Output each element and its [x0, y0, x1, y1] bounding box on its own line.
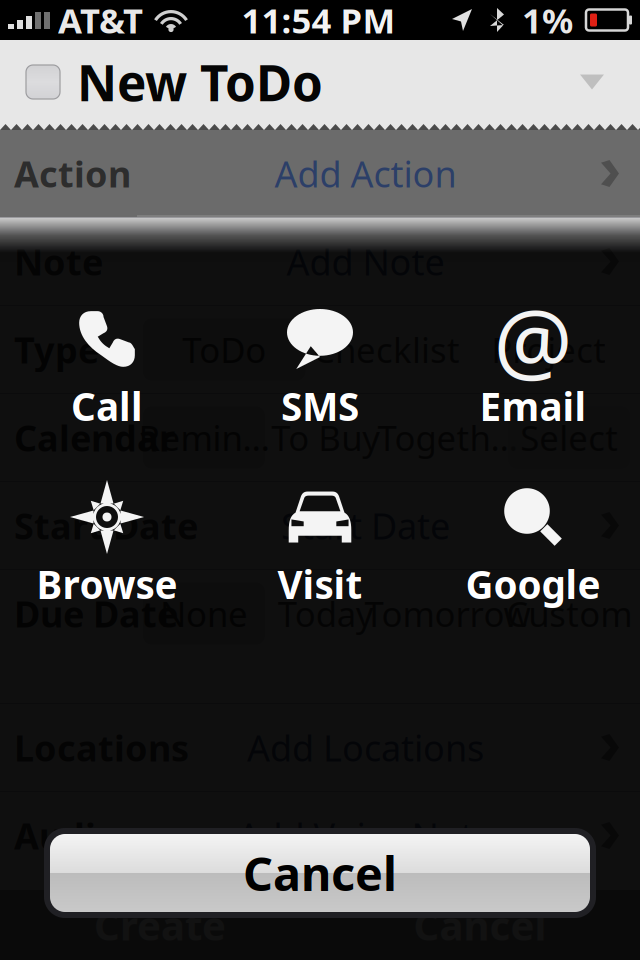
staticText: Project — [491, 326, 606, 372]
button[interactable]: Mark complete — [0, 43, 77, 121]
staticText: Due Date — [14, 590, 178, 637]
button[interactable]: Create — [0, 890, 320, 960]
staticText: Add Locations — [247, 724, 484, 771]
staticText: None — [160, 590, 248, 636]
staticText: Create — [94, 898, 226, 951]
staticText: Note — [14, 238, 103, 285]
staticText: Add Action — [274, 150, 456, 197]
staticText: 11:54 PM — [241, 0, 395, 43]
button[interactable]: Cancel — [320, 890, 640, 960]
staticText: Today — [278, 590, 374, 636]
staticText: Locations — [14, 724, 189, 771]
staticText: Type — [14, 326, 99, 373]
staticText: @ — [493, 281, 572, 397]
staticText: Togeth… — [377, 414, 517, 460]
staticText: SMS — [281, 380, 359, 432]
button[interactable]: Cancel — [44, 828, 596, 918]
staticText: Action — [14, 150, 131, 197]
staticText: Browse — [36, 558, 177, 610]
staticText: Start Date — [14, 502, 198, 549]
staticText: AT&T — [58, 0, 143, 43]
staticText: Tomorrow — [364, 590, 530, 636]
staticText: Select — [520, 414, 618, 460]
staticText: Google — [465, 558, 600, 610]
staticText: Checklist — [313, 326, 460, 372]
staticText: ToDo — [182, 326, 266, 372]
staticText: Email — [479, 380, 586, 432]
button[interactable]: Google — [426, 473, 639, 651]
staticText: Add Voice Note — [237, 812, 493, 859]
staticText: Remin… — [138, 414, 269, 460]
staticText: 1% — [522, 0, 573, 43]
staticText: Add Note — [286, 238, 444, 285]
button[interactable]: Call — [0, 295, 213, 473]
staticText: Call — [71, 380, 143, 432]
button[interactable]: Browse — [0, 473, 213, 651]
staticText: New ToDo — [77, 49, 323, 115]
staticText: Custom — [506, 590, 632, 636]
staticText: Visit — [277, 558, 362, 610]
staticText: Audio — [14, 812, 119, 859]
button[interactable]: Action — [0, 130, 640, 217]
button[interactable]: Show options — [550, 44, 640, 119]
staticText: Start Date — [281, 502, 450, 549]
staticText: To Buy — [271, 414, 380, 460]
button[interactable]: SMS — [213, 295, 426, 473]
staticText: Cancel — [413, 898, 546, 951]
button[interactable]: @ — [426, 295, 639, 473]
button[interactable]: Visit — [213, 473, 426, 651]
staticText: Cancel — [243, 842, 397, 904]
staticText: Calendar — [14, 414, 175, 461]
